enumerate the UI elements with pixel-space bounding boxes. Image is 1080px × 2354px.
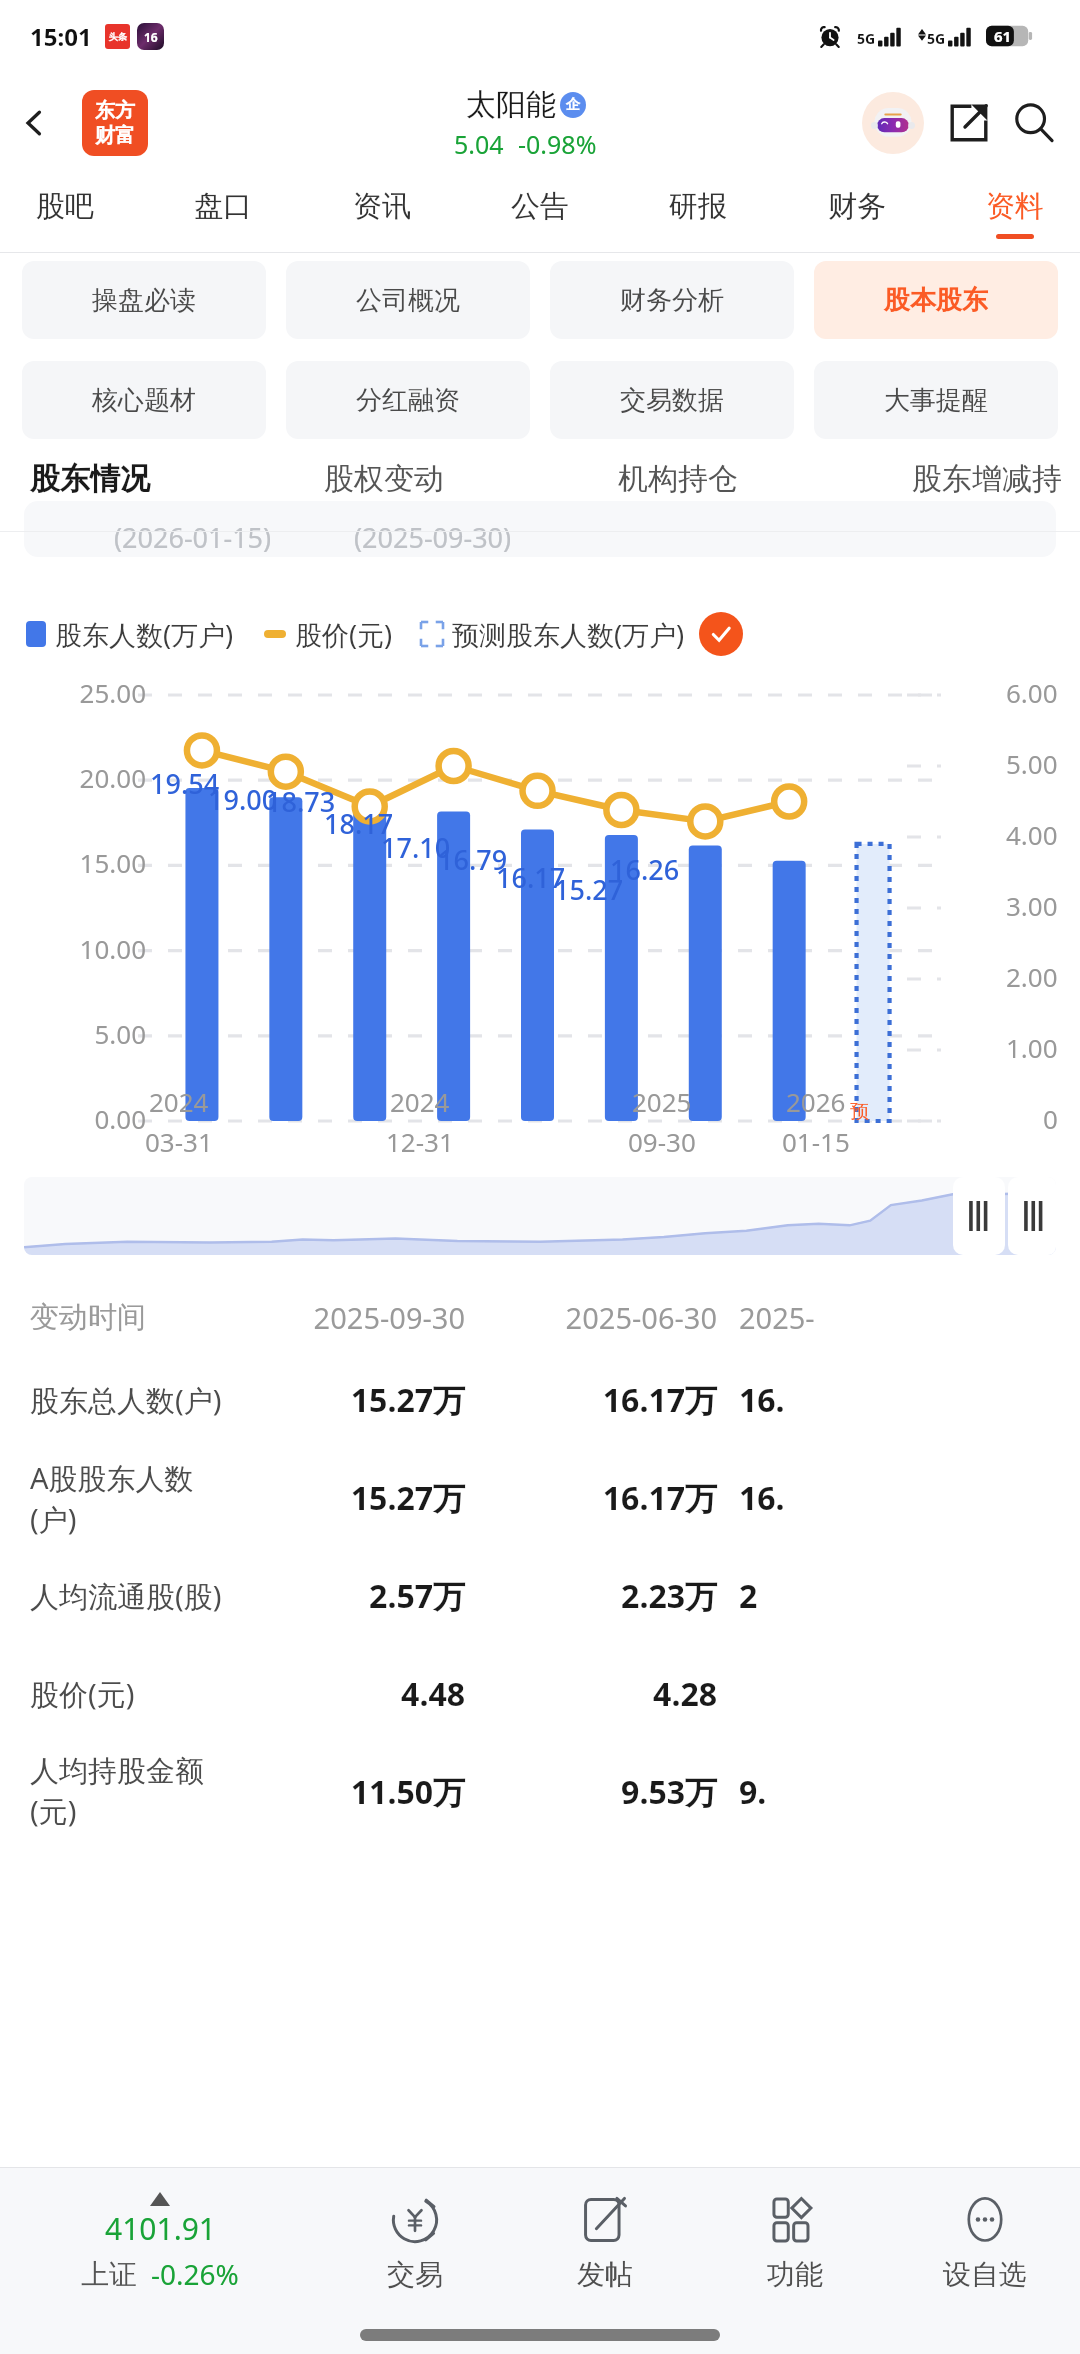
button[interactable]: 人均持股金额(元) (0, 1743, 1080, 1841)
button[interactable]: 股东总人数(户) (0, 1351, 1080, 1449)
button[interactable]: 交易数据 (550, 361, 794, 439)
staticText: 操盘必读 (92, 284, 196, 317)
button[interactable]: 财务 (826, 188, 888, 239)
button[interactable]: 调整区间 (1008, 1177, 1056, 1255)
staticText: (2026-01-15) (114, 519, 272, 556)
staticText: 15.27万 (235, 1476, 465, 1520)
staticText: 2.00 (1006, 959, 1058, 994)
staticText: 5G (857, 29, 876, 48)
button[interactable]: A股股东人数(户) (0, 1449, 1080, 1547)
staticText: -0.98% (518, 127, 597, 161)
staticText: 交易数据 (620, 384, 724, 417)
button[interactable]: 大事提醒 (814, 361, 1058, 439)
staticText: 2.57万 (235, 1574, 465, 1618)
staticText: 人均流通股(股) (30, 1576, 235, 1616)
staticText: 1.00 (1006, 1030, 1058, 1065)
button[interactable]: 搜索 (1004, 93, 1064, 153)
button[interactable]: 研报 (667, 188, 729, 239)
button[interactable]: 核心题材 (22, 361, 266, 439)
staticText: 15:01 (30, 20, 92, 53)
button[interactable]: 返回 (8, 97, 60, 149)
staticText: 预测股东人数(万户) (452, 616, 685, 653)
staticText: 资讯 (353, 188, 411, 225)
button[interactable]: 股东增减持 (912, 460, 1062, 517)
button[interactable]: 太阳能 (454, 86, 597, 161)
button[interactable]: 机构持仓 (618, 460, 738, 517)
staticText: 2024 (390, 1084, 450, 1119)
staticText: 01-15 (782, 1124, 850, 1159)
button[interactable]: 股价(元) (0, 1645, 1080, 1743)
staticText: 变动时间 (30, 1299, 235, 1336)
button[interactable]: 盘口 (192, 188, 254, 239)
staticText: (2025-09-30) (354, 519, 512, 556)
staticText: 太阳能 (466, 86, 556, 124)
button[interactable]: 公司概况 (286, 261, 530, 339)
staticText: 研报 (669, 188, 727, 225)
staticText: 16.17万 (487, 1378, 717, 1422)
staticText: 5.04 (454, 127, 504, 161)
staticText: 交易 (387, 2257, 443, 2292)
button[interactable]: 确认 (699, 612, 743, 656)
staticText: 03-31 (145, 1124, 213, 1159)
staticText: 功能 (767, 2257, 823, 2292)
staticText: -0.26% (151, 2255, 239, 2293)
staticText: 机构持仓 (618, 460, 738, 498)
button[interactable]: 股东情况 (30, 460, 150, 517)
staticText: 2025 (632, 1084, 692, 1119)
staticText: 61 (994, 26, 1012, 46)
staticText: 2 (739, 1574, 758, 1618)
staticText: 企 (566, 96, 580, 114)
button[interactable]: 调整区间 (953, 1177, 1005, 1255)
button[interactable]: 资料 (984, 188, 1046, 239)
staticText: 5.00 (1006, 746, 1058, 781)
staticText: 10.00 (0, 931, 146, 966)
button[interactable]: 资讯 (351, 188, 413, 239)
button[interactable]: 发帖 (510, 2187, 700, 2298)
staticText: 股本股东 (884, 284, 988, 317)
staticText: 财富 (95, 123, 135, 148)
staticText: 核心题材 (92, 384, 196, 417)
staticText: 4101.91 (105, 2208, 216, 2249)
button[interactable]: 财务分析 (550, 261, 794, 339)
button[interactable]: 股本股东 (814, 261, 1058, 339)
staticText: 18.17 (324, 805, 394, 842)
button[interactable]: 股吧 (34, 188, 96, 239)
button[interactable]: 分享 (940, 94, 998, 152)
staticText: 大事提醒 (884, 384, 988, 417)
staticText: 2025-06-30 (487, 1298, 717, 1337)
staticText: 预 (850, 1100, 869, 1124)
staticText: 16.79 (438, 841, 508, 878)
staticText: 16.26 (610, 851, 680, 888)
staticText: 2.23万 (487, 1574, 717, 1618)
staticText: 0.00 (0, 1101, 146, 1136)
staticText: 15.27万 (235, 1378, 465, 1422)
staticText: 分红融资 (356, 384, 460, 417)
button[interactable]: AI 助手 (860, 90, 926, 156)
staticText: 股吧 (36, 188, 94, 225)
staticText: 头条 (109, 31, 127, 42)
button[interactable]: 操盘必读 (22, 261, 266, 339)
staticText: 16.17万 (487, 1476, 717, 1520)
staticText: 股东增减持 (912, 460, 1062, 498)
button[interactable]: 4101.91 (0, 2192, 320, 2293)
button[interactable]: 分红融资 (286, 361, 530, 439)
button[interactable]: 东方 (82, 90, 148, 156)
staticText: 15.27 (554, 871, 624, 908)
staticText: 6.00 (1006, 675, 1058, 710)
button[interactable]: 功能 (700, 2187, 890, 2298)
staticText: 股东人数(万户) (55, 616, 234, 653)
staticText: 16. (739, 1476, 785, 1520)
staticText: 公告 (511, 188, 569, 225)
button[interactable]: 交易 (320, 2187, 510, 2298)
button[interactable]: 公告 (509, 188, 571, 239)
staticText: 0 (1043, 1101, 1058, 1136)
button[interactable]: 设自选 (890, 2187, 1080, 2298)
staticText: 3.00 (1006, 888, 1058, 923)
button[interactable]: 股权变动 (324, 460, 444, 517)
staticText: 25.00 (0, 675, 146, 710)
button[interactable]: 人均流通股(股) (0, 1547, 1080, 1645)
staticText: 18.73 (266, 783, 336, 820)
staticText: 19.54 (150, 765, 220, 802)
staticText: 财务分析 (620, 284, 724, 317)
staticText: 设自选 (943, 2257, 1027, 2292)
